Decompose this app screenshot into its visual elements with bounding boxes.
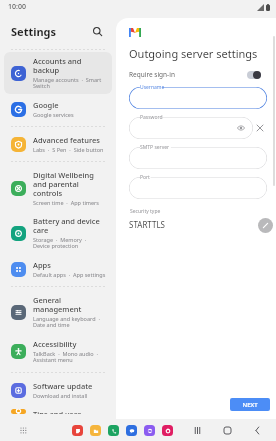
button[interactable]: Search [88,22,106,40]
button[interactable]: Camera [162,425,173,436]
button[interactable]: Accessibility [4,335,112,368]
button[interactable]: Battery and device care [4,212,112,254]
button[interactable]: Digital Wellbeing and parental controls [4,166,112,210]
staticText: Advanced features [33,135,100,145]
staticText: Accounts and backup [33,56,106,75]
button[interactable]: Clear [253,117,267,139]
button[interactable]: Require sign-in [129,70,267,79]
button[interactable] [129,147,267,169]
button[interactable]: Recent apps [190,423,204,437]
button[interactable]: Show password [236,123,246,133]
staticText: Security type [130,208,161,215]
staticText: Software update [33,381,93,391]
button[interactable]: Keep [72,425,83,436]
staticText: Download and install [33,392,88,399]
button[interactable]: NEXT [230,398,270,411]
staticText: NEXT [242,401,258,409]
button[interactable]: Accounts and backup [4,52,112,94]
button[interactable] [129,87,267,109]
button[interactable]: Apps [4,256,112,282]
staticText: Language and keyboard · Date and time [33,315,106,329]
button[interactable]: Edit [258,218,273,233]
staticText: Tips and user manual [33,409,106,414]
button[interactable]: Tips and user manual [4,405,112,418]
staticText: General management [33,295,106,314]
staticText: Screen time · App timers [33,199,99,206]
staticText: SMTP server [140,144,170,151]
button[interactable]: Phone [108,425,119,436]
button[interactable]: Internet [144,425,155,436]
staticText: Apps [33,260,51,270]
staticText: Google [33,100,59,110]
button[interactable]: Software update [4,377,112,403]
button[interactable]: Home [220,423,234,437]
button[interactable]: Files [90,425,101,436]
staticText: Labs · S Pen · Side button [33,146,104,153]
staticText: Password [140,114,163,121]
staticText: Storage · Memory · Device protection [33,236,106,250]
button[interactable]: All apps [16,423,30,437]
staticText: Digital Wellbeing and parental controls [33,170,106,198]
staticText: 10:00 [8,2,26,12]
button[interactable] [129,117,253,139]
staticText: Accessibility [33,339,77,349]
staticText: Battery and device care [33,216,106,235]
button[interactable]: Messages [126,425,137,436]
staticText: Outgoing server settings [129,46,258,61]
staticText: STARTTLS [129,219,166,230]
button[interactable]: Advanced features [4,131,112,157]
button[interactable]: General management [4,291,112,333]
staticText: Manage accounts · Smart Switch [33,76,106,90]
button[interactable]: Google [4,96,112,122]
staticText: Settings [11,24,57,39]
staticText: Default apps · App settings [33,271,106,278]
staticText: Google services [33,111,74,118]
button[interactable]: STARTTLS [129,219,267,230]
staticText: Username [140,84,165,91]
staticText: Port [140,174,150,181]
staticText: TalkBack · Mono audio · Assistant menu [33,350,106,364]
button[interactable] [129,177,267,199]
staticText: Require sign-in [129,70,175,79]
button[interactable]: Back [250,423,264,437]
